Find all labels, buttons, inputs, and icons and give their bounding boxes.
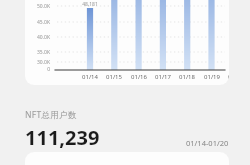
- staticText: 01/19: [200, 73, 224, 81]
- staticText: 30.0K: [28, 59, 50, 66]
- staticText: 45.0K: [28, 19, 50, 26]
- staticText: 01/20: [224, 73, 229, 81]
- staticText: 01/16: [127, 73, 151, 81]
- staticText: 01/18: [175, 73, 199, 81]
- staticText: 01/15: [102, 73, 126, 81]
- staticText: 48,181: [78, 1, 102, 8]
- staticText: 40.0K: [28, 34, 50, 41]
- staticText: 50.0K: [28, 3, 50, 10]
- staticText: 111,239: [25, 124, 100, 151]
- staticText: 0: [28, 66, 50, 73]
- staticText: 01/17: [151, 73, 175, 81]
- staticText: 01/14: [78, 73, 102, 81]
- staticText: NFT总用户数: [25, 109, 77, 121]
- staticText: 01/14-01/20: [186, 138, 229, 148]
- button[interactable]: 50.0K: [25, 0, 229, 85]
- staticText: 35.0K: [28, 49, 50, 56]
